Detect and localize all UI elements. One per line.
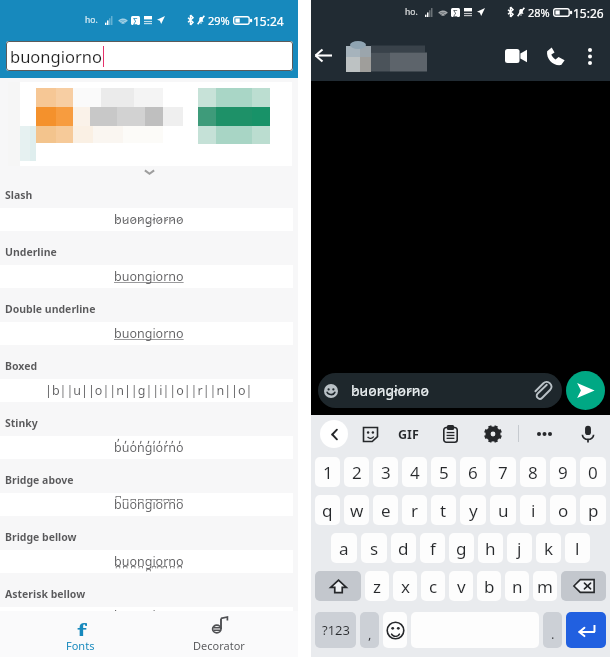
staticText: f: [430, 537, 436, 560]
button[interactable]: Settings: [483, 424, 503, 444]
button[interactable]: o: [550, 495, 576, 525]
button[interactable]: q: [315, 495, 340, 525]
staticText: GIF: [398, 426, 419, 443]
staticText: a: [339, 537, 349, 560]
button[interactable]: y: [460, 495, 486, 525]
button[interactable]: s: [361, 533, 387, 563]
button[interactable]: d: [391, 533, 416, 563]
staticText: t: [440, 499, 447, 522]
button[interactable]: More options: [574, 40, 606, 72]
staticText: ho.: [405, 6, 418, 18]
button[interactable]: z: [365, 571, 389, 601]
button[interactable]: Stinky: [0, 409, 298, 466]
staticText: 15:26: [573, 5, 604, 19]
button[interactable]: Clipboard: [441, 425, 459, 443]
staticText: |b||u||o||n||g||i||o||r||n||o|: [45, 382, 253, 399]
staticText: 0: [588, 461, 598, 484]
staticText: v: [457, 575, 466, 598]
staticText: buongiorno: [10, 45, 102, 67]
staticText: Bridge above: [5, 473, 74, 487]
button[interactable]: Back: [311, 30, 335, 81]
button[interactable]: a: [331, 533, 357, 563]
button[interactable]: Shift: [315, 571, 361, 601]
button[interactable]: Video call: [498, 38, 534, 74]
staticText: 3: [381, 461, 391, 484]
button[interactable]: Bridge bellow: [0, 523, 298, 580]
staticText: ,: [368, 625, 372, 643]
button[interactable]: ,: [360, 612, 379, 648]
button[interactable]: 5: [431, 457, 456, 487]
staticText: z: [373, 575, 381, 598]
button[interactable]: Enter: [566, 612, 606, 648]
staticText: Boxed: [5, 359, 38, 373]
button[interactable]: GIF: [398, 421, 419, 447]
staticText: 5: [439, 461, 449, 484]
button[interactable]: Emoji: [383, 612, 407, 648]
button[interactable]: Stickers: [359, 423, 381, 445]
button[interactable]: More: [535, 425, 553, 443]
button[interactable]: Boxed: [0, 352, 298, 409]
button[interactable]: Collapse: [320, 420, 348, 448]
button[interactable]: v: [449, 571, 473, 601]
button[interactable]: e: [373, 495, 398, 525]
button[interactable]: Voice input: [577, 423, 599, 445]
button[interactable]: t: [431, 495, 456, 525]
button[interactable]: Bridge above: [0, 466, 298, 523]
button[interactable]: buongiorno: [6, 41, 293, 71]
button[interactable]: h: [478, 533, 503, 563]
button[interactable]: Slash: [0, 181, 298, 238]
button[interactable]: j: [507, 533, 532, 563]
staticText: y: [469, 499, 478, 522]
button[interactable]: p: [580, 495, 606, 525]
button[interactable]: 2: [344, 457, 369, 487]
button[interactable]: i: [520, 495, 546, 525]
button[interactable]: 8: [520, 457, 546, 487]
staticText: .: [551, 625, 555, 643]
staticText: Underline: [5, 245, 57, 259]
button[interactable]: Backspace: [561, 571, 606, 601]
staticText: 28%: [528, 5, 550, 19]
button[interactable]: c: [421, 571, 445, 601]
button[interactable]: g: [449, 533, 474, 563]
staticText: 7: [498, 461, 508, 484]
staticText: 9: [558, 461, 568, 484]
button[interactable]: r: [402, 495, 427, 525]
button[interactable]: Double underline: [0, 295, 298, 352]
button[interactable]: x: [393, 571, 417, 601]
button[interactable]: b: [477, 571, 501, 601]
button[interactable]: b̷u̷o̷n̷g̷i̷o̷r̷n̷o̷: [318, 373, 562, 408]
staticText: b͆u͆o͆n͆g͆i͆o͆r͆n͆o͆: [114, 496, 184, 513]
staticText: Stinky: [5, 416, 38, 430]
button[interactable]: ?123: [315, 612, 356, 648]
button[interactable]: m: [533, 571, 557, 601]
button[interactable]: k: [536, 533, 561, 563]
button[interactable]: 1: [315, 457, 340, 487]
staticText: n: [512, 575, 523, 598]
button[interactable]: 3: [373, 457, 398, 487]
staticText: b͙u͙o͙n͙g͙i͙o͙r͙n͙o͙: [114, 607, 184, 611]
staticText: u: [498, 499, 509, 522]
button[interactable]: Underline: [0, 238, 298, 295]
button[interactable]: Asterisk bellow: [0, 580, 298, 611]
button[interactable]: 4: [402, 457, 427, 487]
button[interactable]: 7: [490, 457, 516, 487]
button[interactable]: u: [490, 495, 516, 525]
staticText: 6: [468, 461, 478, 484]
staticText: 4: [410, 461, 420, 484]
button[interactable]: 6: [460, 457, 486, 487]
button[interactable]: 9: [550, 457, 576, 487]
button[interactable]: Call: [537, 38, 573, 74]
button[interactable]: Decorator: [160, 611, 278, 657]
button[interactable]: Send: [566, 371, 605, 410]
button[interactable]: ƒ: [0, 611, 160, 657]
button[interactable]: n: [505, 571, 529, 601]
button[interactable]: 0: [580, 457, 606, 487]
button[interactable]: f: [420, 533, 445, 563]
button[interactable]: l: [565, 533, 590, 563]
button[interactable]: w: [344, 495, 369, 525]
staticText: 29%: [208, 13, 230, 27]
button[interactable]: .: [543, 612, 562, 648]
staticText: w: [350, 499, 364, 522]
staticText: Slash: [5, 188, 33, 202]
